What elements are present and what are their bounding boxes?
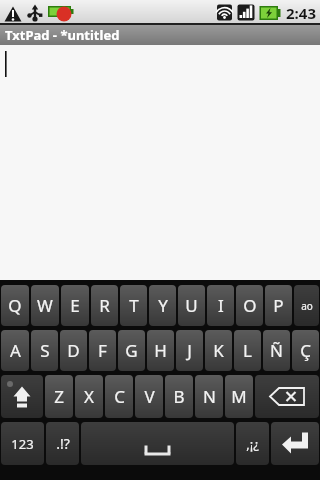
button[interactable]: M (225, 375, 253, 418)
button[interactable]: P (265, 285, 292, 326)
staticText: C (114, 385, 125, 408)
button[interactable]: H (147, 330, 174, 371)
button[interactable]: Ñ (263, 330, 290, 371)
button[interactable]: I (207, 285, 234, 326)
button[interactable] (0, 45, 320, 280)
button[interactable]: U (178, 285, 205, 326)
staticText: 2:43 (286, 3, 316, 23)
staticText: L (243, 339, 252, 362)
button[interactable]: G (118, 330, 145, 371)
staticText: S (40, 339, 50, 362)
button[interactable]: ao (294, 285, 319, 326)
staticText: ,¡¿ (246, 435, 259, 453)
staticText: .!? (56, 434, 70, 453)
button[interactable]: 123 (1, 422, 44, 465)
staticText: Ç (300, 339, 311, 362)
staticText: ao (301, 299, 313, 313)
staticText: U (185, 294, 198, 317)
button[interactable]: Q (1, 285, 29, 326)
button[interactable]: O (236, 285, 263, 326)
staticText: V (144, 385, 155, 408)
staticText: D (67, 339, 80, 362)
staticText: J (187, 339, 192, 362)
staticText: B (173, 385, 185, 408)
button[interactable]: F (89, 330, 116, 371)
button[interactable]: W (31, 285, 59, 326)
button[interactable]: E (61, 285, 89, 326)
button[interactable]: Z (45, 375, 73, 418)
button[interactable]: A (1, 330, 29, 371)
staticText: TxtPad - *untitled (5, 26, 120, 44)
staticText: A (10, 339, 21, 362)
staticText: R (99, 294, 110, 317)
button[interactable]: V (135, 375, 163, 418)
button[interactable]: Backspace (255, 375, 319, 418)
button[interactable]: B (165, 375, 193, 418)
button[interactable]: K (205, 330, 232, 371)
button[interactable]: J (176, 330, 203, 371)
staticText: I (218, 294, 224, 317)
staticText: W (37, 294, 53, 317)
button[interactable]: Y (149, 285, 176, 326)
staticText: F (98, 339, 107, 362)
staticText: Z (54, 385, 64, 408)
staticText: 123 (11, 435, 34, 453)
button[interactable]: ,¡¿ (236, 422, 269, 465)
staticText: K (213, 339, 224, 362)
staticText: O (243, 294, 257, 317)
staticText: Q (8, 294, 22, 317)
staticText: P (273, 294, 284, 317)
staticText: T (129, 294, 139, 317)
staticText: H (154, 339, 167, 362)
staticText: M (231, 385, 247, 408)
button[interactable]: Ç (292, 330, 319, 371)
staticText: X (84, 385, 94, 408)
staticText: Y (158, 294, 168, 317)
button[interactable]: T (120, 285, 147, 326)
button[interactable]: Shift (1, 375, 43, 418)
staticText: N (203, 385, 216, 408)
button[interactable]: L (234, 330, 261, 371)
staticText: Ñ (270, 339, 283, 362)
button[interactable]: .!? (46, 422, 79, 465)
button[interactable]: Space (81, 422, 234, 465)
button[interactable]: S (31, 330, 58, 371)
button[interactable]: D (60, 330, 87, 371)
button[interactable]: R (91, 285, 118, 326)
staticText: E (70, 294, 80, 317)
button[interactable]: N (195, 375, 223, 418)
button[interactable]: Enter (271, 422, 319, 465)
button[interactable]: C (105, 375, 133, 418)
button[interactable]: X (75, 375, 103, 418)
staticText: G (125, 339, 138, 362)
